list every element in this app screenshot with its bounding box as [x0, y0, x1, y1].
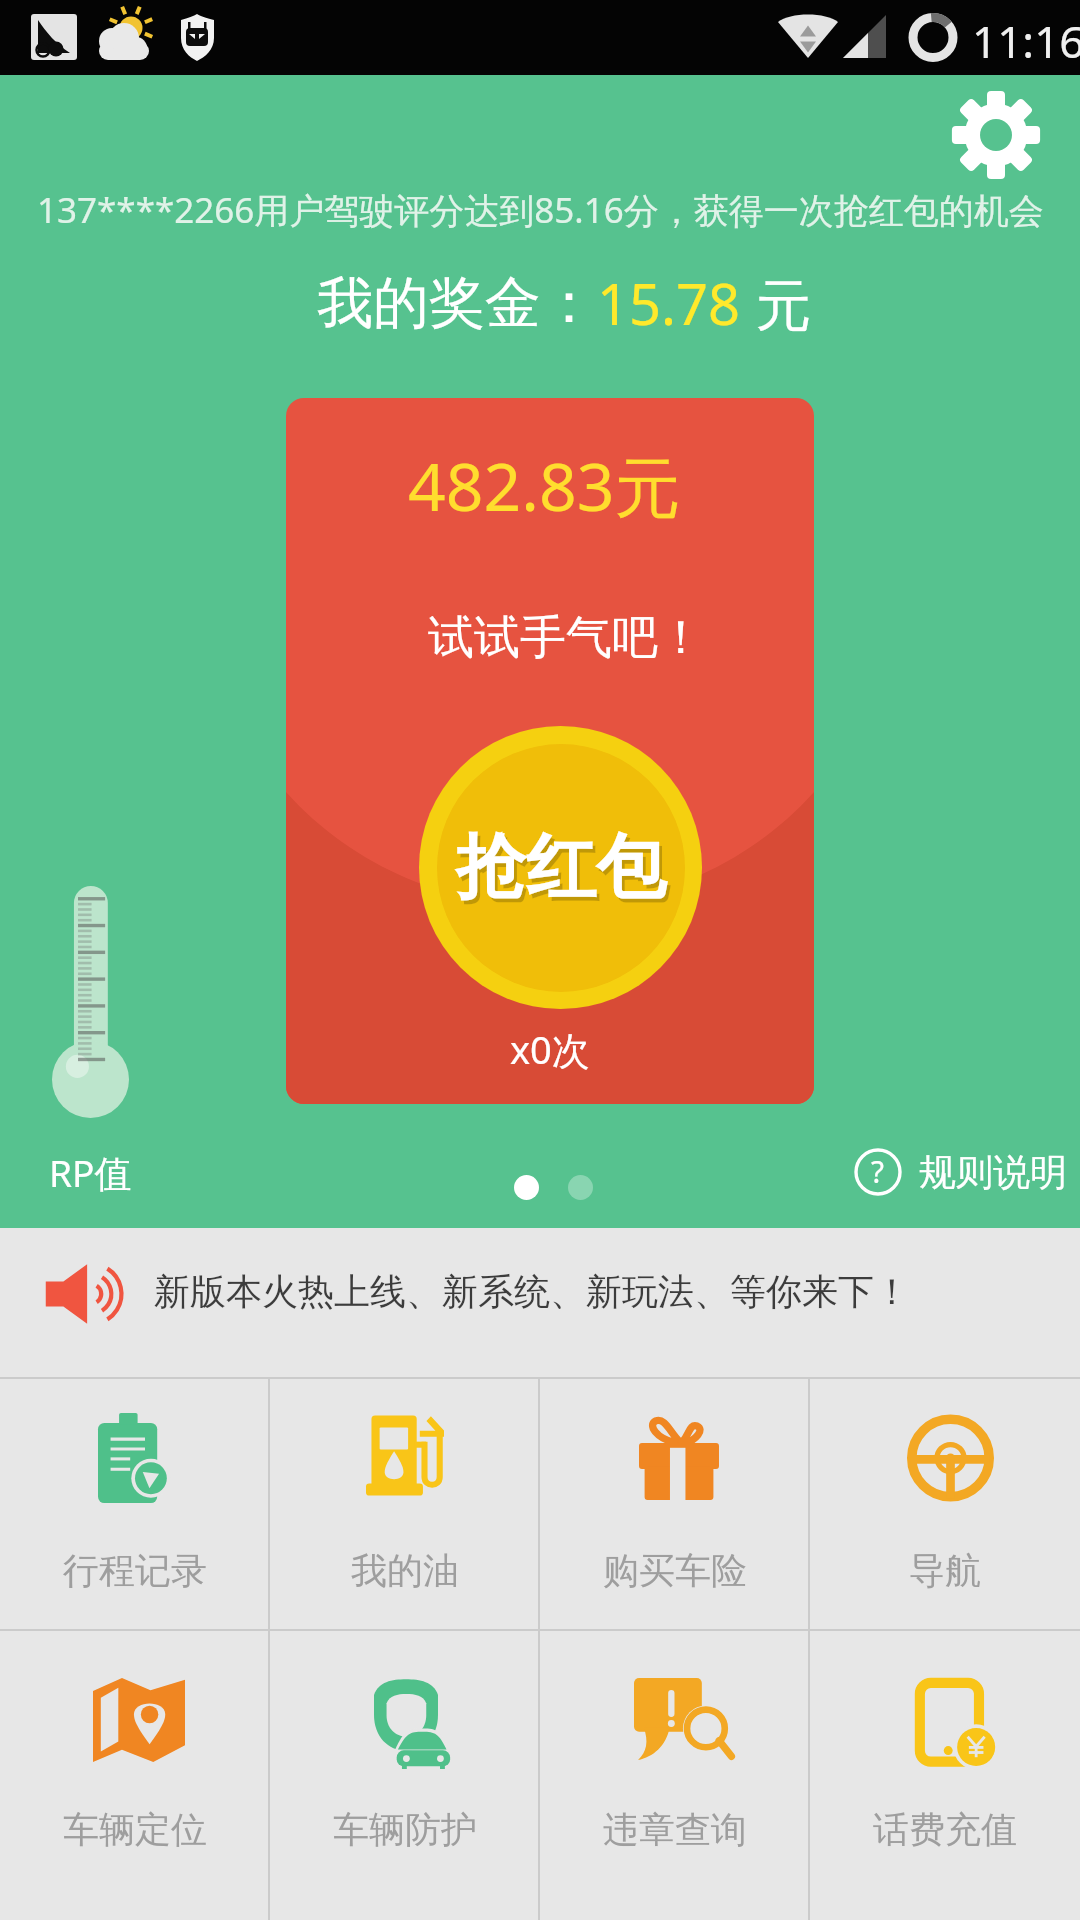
staticText: 行程记录	[63, 1548, 207, 1593]
button[interactable]: 话费充值	[810, 1631, 1080, 1920]
button[interactable]: 车辆定位	[0, 1631, 270, 1920]
button[interactable]: 新版本火热上线、新系统、新玩法、等你来下！	[0, 1228, 1080, 1377]
staticText: 话费充值	[873, 1807, 1017, 1852]
staticText: 违章查询	[603, 1807, 747, 1852]
staticText: 购买车险	[603, 1548, 747, 1593]
button[interactable]: 违章查询	[540, 1631, 810, 1920]
staticText: 试试手气吧！	[428, 609, 704, 667]
button[interactable]: 482.83元	[286, 398, 814, 1104]
button[interactable]: ?	[854, 1148, 1067, 1196]
staticText: 元	[741, 265, 812, 341]
button[interactable]: 抢红包	[419, 726, 702, 1009]
staticText: 我的奖金：	[317, 268, 597, 339]
staticText: RP值	[49, 1147, 132, 1198]
staticText: 11:16	[972, 11, 1080, 71]
button[interactable]: 车辆防护	[270, 1631, 540, 1920]
staticText: 规则说明	[919, 1149, 1067, 1196]
staticText: 137****2266用户驾驶评分达到85.16分，获得一次抢红包的机会	[37, 186, 1044, 234]
staticText: 我的油	[351, 1548, 459, 1593]
button[interactable]: 我的油	[270, 1379, 540, 1629]
button[interactable]: 行程记录	[0, 1379, 270, 1629]
button[interactable]: 导航	[810, 1379, 1080, 1629]
button[interactable]: Settings	[951, 90, 1041, 180]
button[interactable]: 购买车险	[540, 1379, 810, 1629]
staticText: ?	[871, 1151, 885, 1192]
staticText: 482.83元	[408, 440, 681, 530]
staticText: 导航	[909, 1548, 981, 1593]
staticText: 15.78	[597, 265, 741, 341]
staticText: 抢红包	[459, 828, 669, 916]
staticText: 车辆定位	[63, 1807, 207, 1852]
staticText: 车辆防护	[333, 1807, 477, 1852]
staticText: 新版本火热上线、新系统、新玩法、等你来下！	[154, 1269, 910, 1314]
staticText: x0次	[510, 1023, 590, 1075]
staticText: 抢红包	[456, 824, 666, 912]
